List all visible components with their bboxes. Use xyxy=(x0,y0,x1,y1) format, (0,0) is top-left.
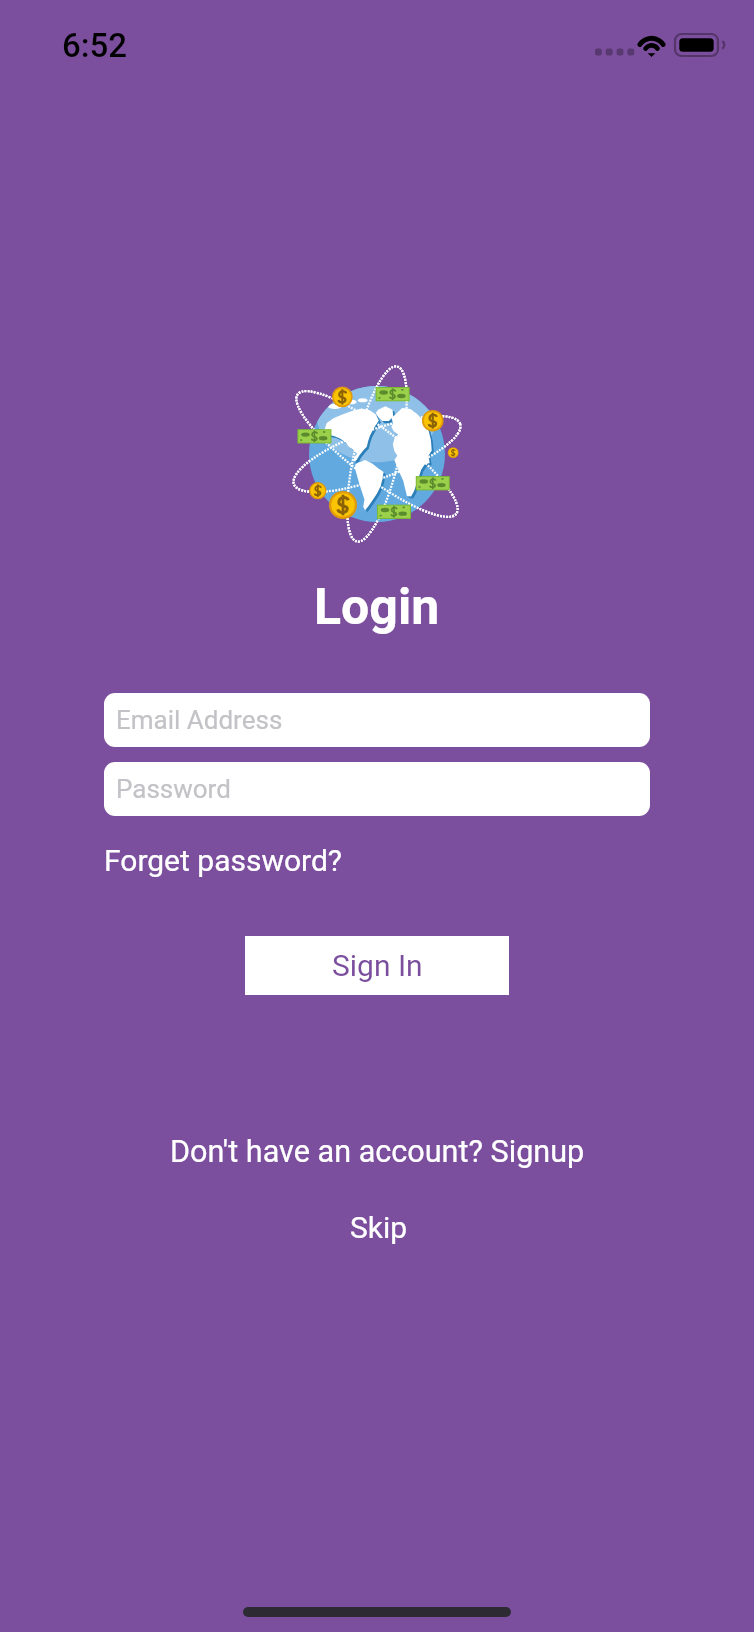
other: Wi-Fi xyxy=(635,34,668,56)
staticText: Password xyxy=(116,774,231,804)
button[interactable]: Skip xyxy=(330,1205,428,1250)
staticText: Skip xyxy=(350,1210,408,1245)
button[interactable]: Don't have an account? Signup xyxy=(162,1129,593,1175)
button[interactable]: Password xyxy=(104,762,650,816)
staticText: Forget password? xyxy=(104,843,343,878)
staticText: Don't have an account? Signup xyxy=(170,1134,585,1170)
staticText: Login xyxy=(314,578,440,637)
staticText: Sign In xyxy=(332,948,423,983)
button[interactable]: Forget password? xyxy=(98,839,349,882)
other: Cellular signal xyxy=(595,46,629,58)
other: Battery xyxy=(675,34,723,56)
staticText: Email Address xyxy=(116,705,283,735)
staticText: 6:52 xyxy=(62,26,128,65)
button[interactable]: Sign In xyxy=(245,936,509,995)
button[interactable]: Email Address xyxy=(104,693,650,747)
